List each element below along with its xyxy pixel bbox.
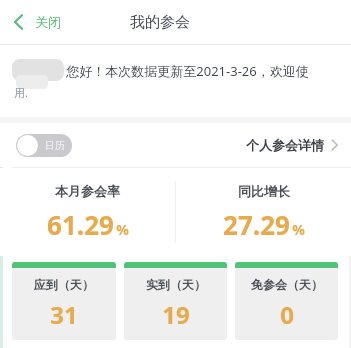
staticText: 免参会（天） xyxy=(251,277,323,292)
staticText: 实到（天） xyxy=(146,277,206,292)
staticText: 31 xyxy=(50,298,78,331)
staticText: 61.29 xyxy=(47,207,114,242)
staticText: 关闭 xyxy=(35,14,61,30)
button[interactable]: 应到（天） xyxy=(12,262,116,340)
button[interactable]: 本月参会率 xyxy=(0,168,175,256)
staticText: % xyxy=(292,220,305,239)
staticText: % xyxy=(116,220,129,239)
staticText: 19 xyxy=(162,298,190,331)
staticText: 0 xyxy=(280,298,294,331)
staticText: 27.29 xyxy=(223,207,290,242)
staticText: 日历 xyxy=(45,139,65,152)
staticText: 应到（天） xyxy=(34,277,94,292)
button[interactable]: 个人参会详情 xyxy=(242,131,343,159)
staticText: 我的参会 xyxy=(130,13,190,32)
staticText: 用. xyxy=(14,85,28,100)
staticText: 同比增长 xyxy=(238,183,290,199)
button[interactable]: 日历 开关 xyxy=(16,134,72,157)
staticText: 您好！本次数据更新至2021-3-26，欢迎使 xyxy=(66,62,309,80)
button[interactable]: 免参会（天） xyxy=(235,262,338,340)
button[interactable]: 实到（天） xyxy=(124,262,227,340)
staticText: 个人参会详情 xyxy=(246,137,324,153)
button[interactable]: 关闭 xyxy=(8,7,65,37)
button[interactable]: 同比增长 xyxy=(176,168,351,256)
staticText: 本月参会率 xyxy=(55,183,120,199)
